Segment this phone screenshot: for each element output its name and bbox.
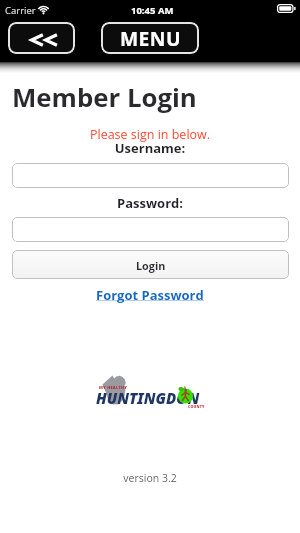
staticText: Password: bbox=[0, 194, 300, 212]
button[interactable] bbox=[12, 217, 289, 242]
staticText: MY HEALTHY bbox=[99, 385, 128, 390]
button[interactable]: Back bbox=[8, 22, 75, 54]
staticText: COUNTY bbox=[188, 404, 205, 409]
staticText: 10:45 AM bbox=[131, 4, 174, 17]
staticText: HUNTINGDON bbox=[96, 388, 200, 408]
staticText: Please sign in below. bbox=[0, 126, 300, 143]
staticText: Username: bbox=[0, 139, 300, 157]
staticText: version 3.2 bbox=[0, 471, 300, 485]
staticText: Login bbox=[136, 258, 166, 273]
button[interactable]: Login bbox=[12, 250, 289, 279]
staticText: MENU bbox=[120, 25, 181, 51]
button[interactable] bbox=[12, 163, 289, 188]
staticText: Member Login bbox=[12, 79, 197, 114]
button[interactable]: MENU bbox=[101, 22, 199, 54]
staticText: Carrier bbox=[5, 4, 36, 17]
button[interactable]: Forgot Password bbox=[96, 286, 204, 304]
